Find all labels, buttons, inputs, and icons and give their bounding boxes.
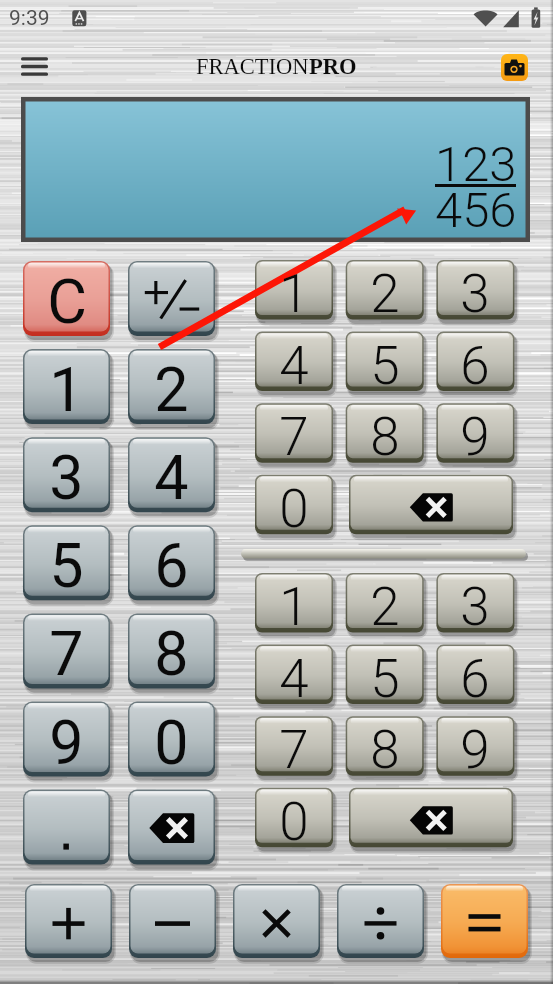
staticText: 1 xyxy=(279,263,309,323)
button[interactable]: Divide xyxy=(337,884,424,958)
button[interactable]: 1 xyxy=(255,573,333,633)
button[interactable]: 7 xyxy=(23,613,110,688)
staticText: 8 xyxy=(154,618,189,689)
button[interactable]: Minus xyxy=(129,884,216,958)
staticText: 2 xyxy=(154,354,189,425)
staticText: 2 xyxy=(370,263,400,323)
staticText: 7 xyxy=(49,618,84,689)
button[interactable]: 5 xyxy=(23,525,110,600)
button[interactable]: 3 xyxy=(436,260,514,320)
staticText: 1 xyxy=(49,354,84,425)
button[interactable]: Equals xyxy=(441,884,528,958)
button[interactable]: 6 xyxy=(128,525,215,600)
staticText: 1 xyxy=(279,576,309,636)
staticText: 9 xyxy=(49,707,84,778)
button[interactable]: Backspace xyxy=(128,790,215,865)
staticText: 7 xyxy=(279,406,309,466)
staticText: 3 xyxy=(49,442,84,513)
staticText: 4 xyxy=(279,335,309,395)
button[interactable]: 2 xyxy=(128,349,215,424)
staticText: 5 xyxy=(370,335,400,395)
staticText: 0 xyxy=(279,791,309,851)
button[interactable]: 5 xyxy=(346,645,424,705)
button[interactable]: 8 xyxy=(346,716,424,776)
button[interactable]: Backspace xyxy=(349,788,513,848)
button[interactable]: Decimal point xyxy=(23,790,110,865)
button[interactable]: 3 xyxy=(23,437,110,512)
button[interactable]: 1 xyxy=(255,260,333,320)
staticText: PRO xyxy=(309,54,357,79)
staticText: 4 xyxy=(279,648,309,708)
button[interactable]: 1 xyxy=(23,349,110,424)
button[interactable]: Backspace xyxy=(349,475,513,535)
staticText: 6 xyxy=(460,335,490,395)
button[interactable]: Plus minus xyxy=(128,261,215,336)
staticText: 8 xyxy=(370,406,400,466)
button[interactable]: 7 xyxy=(255,716,333,776)
button[interactable]: Camera xyxy=(501,54,528,81)
staticText: 7 xyxy=(279,719,309,779)
staticText: 9 xyxy=(460,406,490,466)
button[interactable]: 0 xyxy=(255,475,333,535)
staticText: 123 xyxy=(435,136,517,182)
staticText: 456 xyxy=(435,182,517,228)
button[interactable]: 8 xyxy=(128,613,215,688)
staticText: 8 xyxy=(370,719,400,779)
staticText: 2 xyxy=(370,576,400,636)
button[interactable]: 4 xyxy=(255,645,333,705)
staticText: 0 xyxy=(154,707,189,778)
button[interactable]: 7 xyxy=(255,403,333,463)
button[interactable]: 6 xyxy=(436,645,514,705)
button[interactable]: 9 xyxy=(23,702,110,777)
staticText: 3 xyxy=(460,263,490,323)
staticText: 6 xyxy=(154,530,189,601)
staticText: 9 xyxy=(460,719,490,779)
button[interactable]: 4 xyxy=(255,332,333,392)
staticText: C xyxy=(47,266,87,337)
button[interactable]: 3 xyxy=(436,573,514,633)
staticText: 5 xyxy=(49,530,84,601)
button[interactable]: 2 xyxy=(346,573,424,633)
staticText: FRACTION xyxy=(196,54,309,79)
button[interactable]: Multiply xyxy=(233,884,320,958)
staticText: 9:39 xyxy=(9,6,50,31)
button[interactable]: 6 xyxy=(436,332,514,392)
button[interactable]: 0 xyxy=(255,788,333,848)
button[interactable]: 5 xyxy=(346,332,424,392)
staticText: 6 xyxy=(460,648,490,708)
button[interactable]: 9 xyxy=(436,403,514,463)
button[interactable]: Menu xyxy=(12,46,58,88)
staticText: 5 xyxy=(370,648,400,708)
button[interactable]: 0 xyxy=(128,702,215,777)
button[interactable]: 9 xyxy=(436,716,514,776)
button[interactable]: 4 xyxy=(128,437,215,512)
button[interactable]: C xyxy=(23,261,110,336)
button[interactable]: 2 xyxy=(346,260,424,320)
staticText: 0 xyxy=(279,478,309,538)
button[interactable]: Plus xyxy=(25,884,112,958)
staticText: 3 xyxy=(460,576,490,636)
button[interactable]: 8 xyxy=(346,403,424,463)
staticText: 4 xyxy=(154,442,189,513)
